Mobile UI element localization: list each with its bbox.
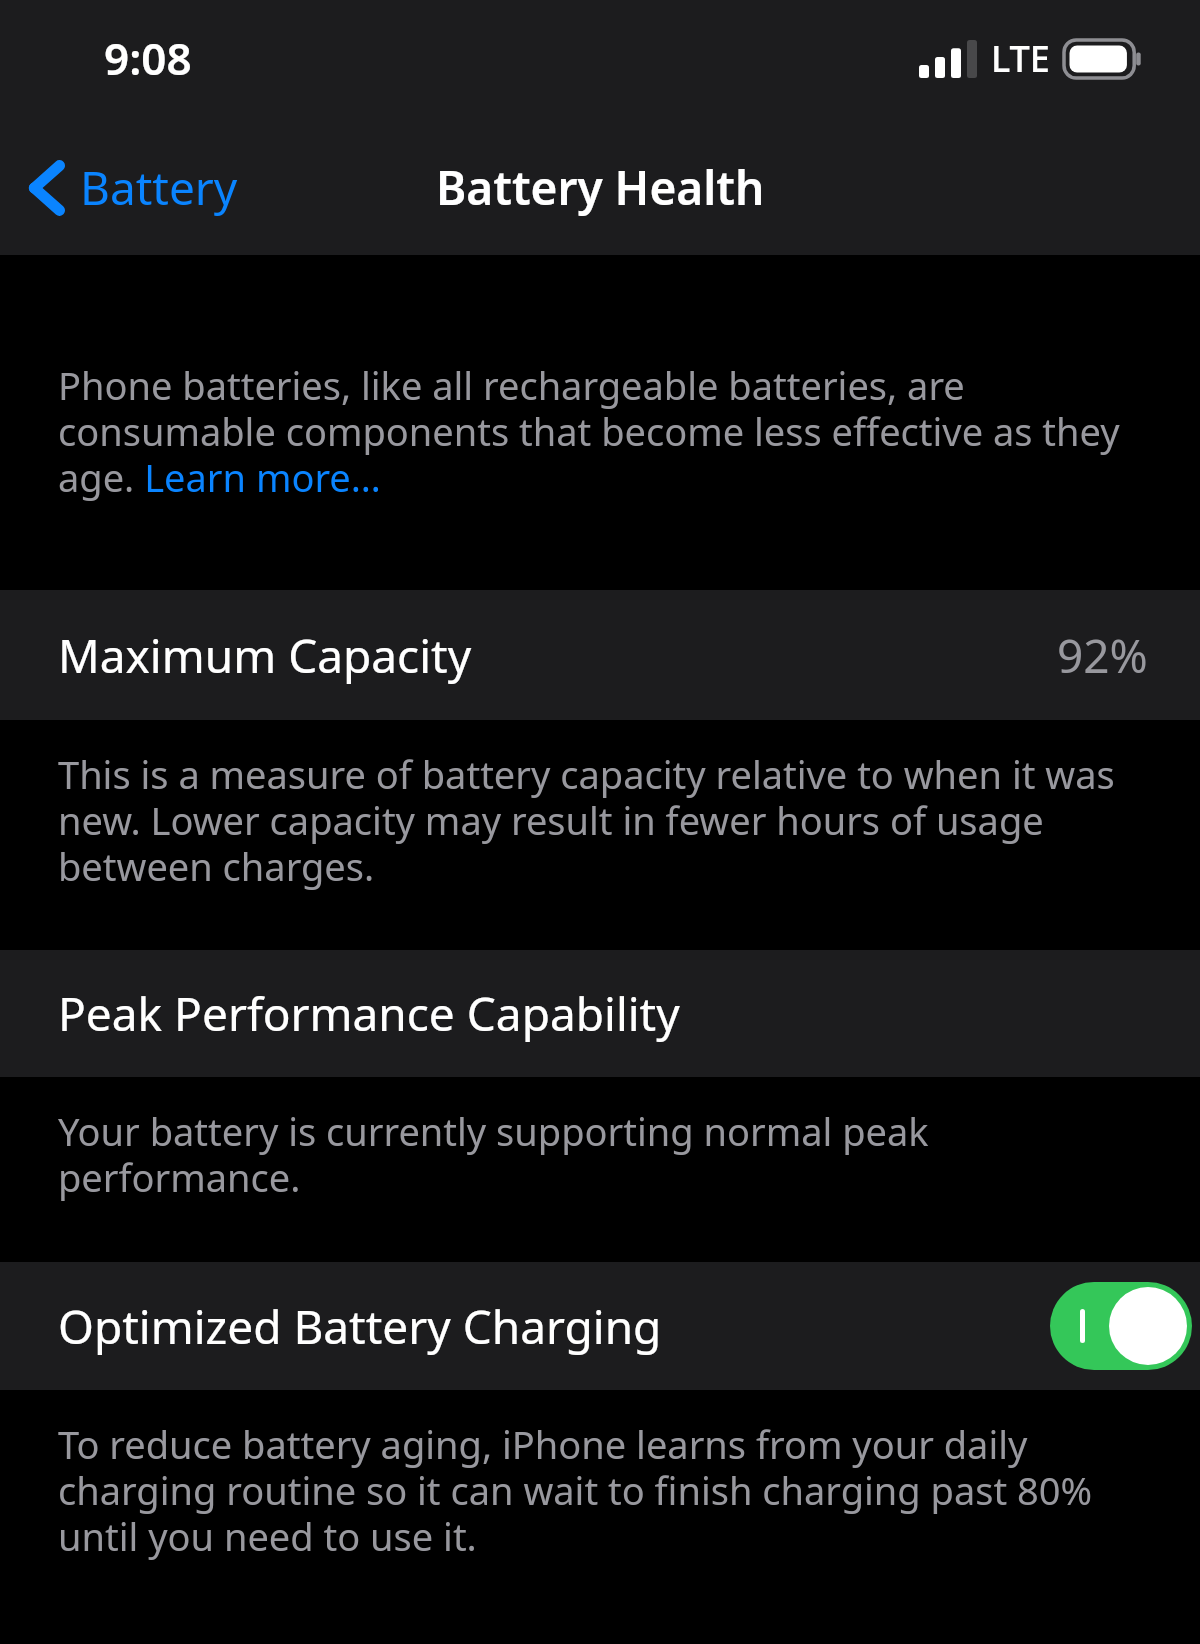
staticText: LTE bbox=[991, 34, 1050, 83]
button[interactable]: Maximum Capacity bbox=[0, 590, 1200, 720]
staticText: Maximum Capacity bbox=[58, 624, 472, 687]
staticText: Battery Health bbox=[436, 156, 765, 219]
staticText: Your battery is currently supporting nor… bbox=[58, 1105, 1000, 1203]
button[interactable]: Optimized Battery Charging bbox=[0, 1262, 1200, 1390]
staticText: 9:08 bbox=[104, 28, 192, 88]
staticText: Optimized Battery Charging bbox=[58, 1295, 662, 1358]
staticText: To reduce battery aging, iPhone learns f… bbox=[58, 1418, 1148, 1562]
staticText: This is a measure of battery capacity re… bbox=[58, 748, 1148, 892]
button[interactable]: Battery bbox=[0, 142, 262, 233]
staticText: Peak Performance Capability bbox=[58, 982, 680, 1045]
button[interactable]: Peak Performance Capability bbox=[0, 950, 1200, 1077]
staticText: 92% bbox=[1057, 624, 1148, 687]
staticText: Battery bbox=[80, 156, 238, 219]
staticText: Phone batteries, like all rechargeable b… bbox=[58, 359, 1148, 503]
button[interactable]: Optimized Battery Charging toggle, on bbox=[1050, 1282, 1192, 1370]
